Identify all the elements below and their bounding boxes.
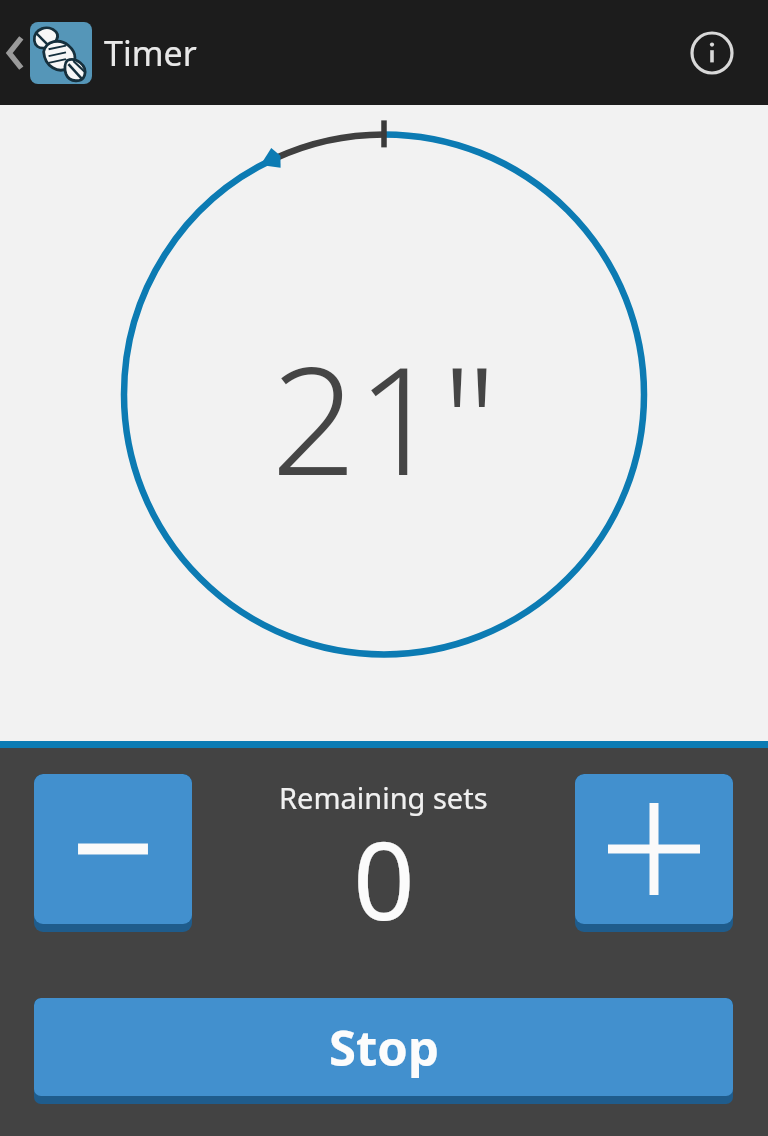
button[interactable]: Add set	[575, 774, 733, 932]
button[interactable]: Timer	[0, 22, 197, 84]
staticText: Remaining sets	[279, 778, 488, 817]
button[interactable]: Information	[684, 25, 740, 81]
button[interactable]: Stop	[34, 998, 733, 1104]
staticText: 0	[353, 805, 415, 928]
staticText: Stop	[329, 1014, 439, 1081]
staticText: 21"	[271, 315, 497, 519]
staticText: Timer	[104, 30, 197, 76]
button[interactable]: Remove set	[34, 774, 192, 932]
